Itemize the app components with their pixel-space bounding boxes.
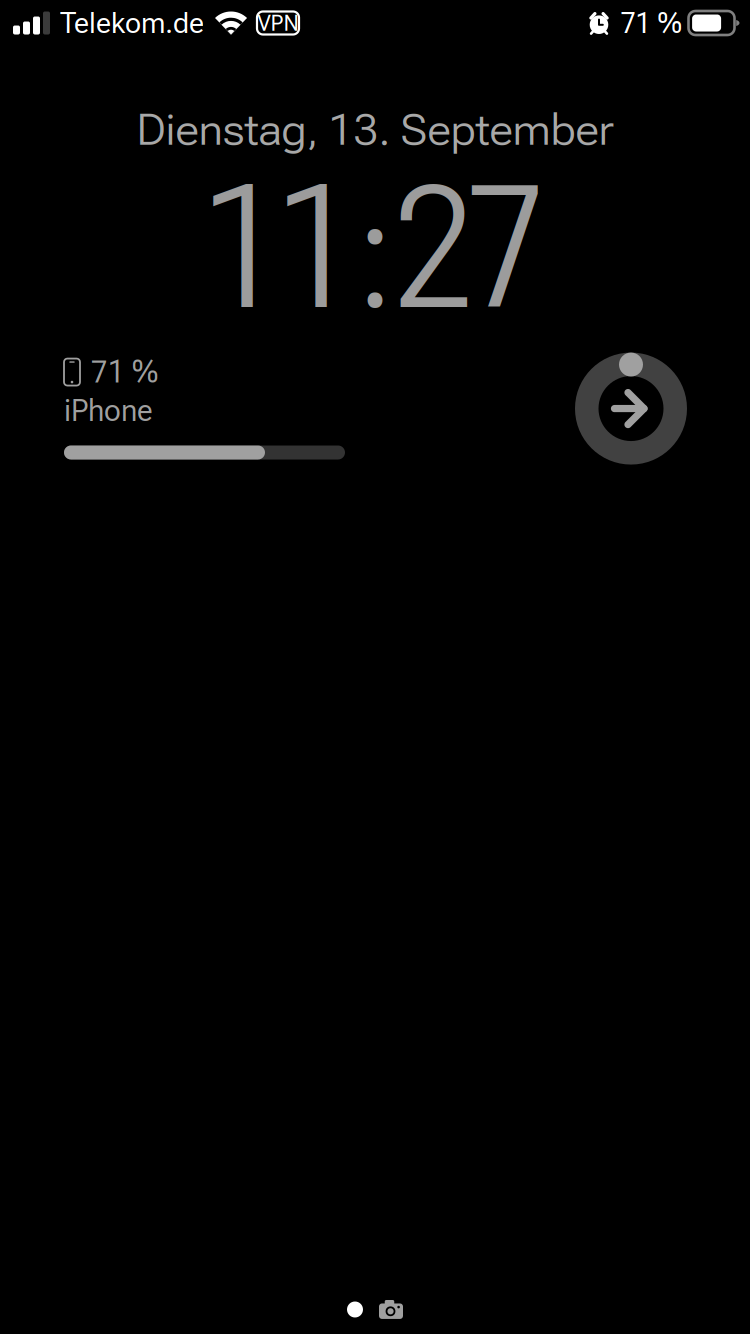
staticText: 71 % bbox=[620, 6, 681, 40]
staticText: Dienstag, 13. September bbox=[136, 104, 613, 156]
staticText: VPN bbox=[257, 10, 298, 36]
button[interactable]: Camera bbox=[379, 1300, 403, 1319]
staticText: 11:27 bbox=[206, 149, 544, 349]
staticText: iPhone bbox=[64, 393, 153, 428]
button[interactable]: Flashlight bbox=[347, 1301, 363, 1317]
staticText: 71 % bbox=[91, 354, 158, 390]
staticText: Telekom.de bbox=[60, 6, 204, 40]
